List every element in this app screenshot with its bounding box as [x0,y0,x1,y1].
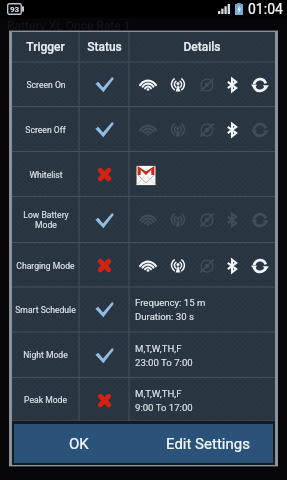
staticText: Details [183,40,221,54]
button[interactable]: Smart Schedule [12,287,275,332]
button[interactable]: Peak Mode [12,378,275,422]
staticText: Screen On [26,80,66,90]
other: GPS [198,76,216,94]
button[interactable]: Charging Mode [12,243,275,288]
other: Mobile data [169,76,187,94]
staticText: Duration: 30 s [135,311,194,322]
staticText: Night Mode [23,350,68,360]
button[interactable]: Night Mode [12,332,275,378]
button[interactable]: Whitelist [12,152,275,197]
button[interactable]: Edit Settings [143,424,273,463]
staticText: Edit Settings [166,435,250,453]
other: GPS [198,211,216,229]
staticText: OK [69,435,89,453]
button[interactable]: Screen Off [12,107,275,152]
other: GPS [198,121,216,139]
other: Sync [251,211,269,229]
other: Bluetooth [225,123,239,137]
staticText: Charging Mode [16,261,75,271]
other: Bluetooth [225,213,239,227]
other: Sync [251,257,269,275]
staticText: M,T,W,TH,F [135,388,182,399]
staticText: Status [87,40,122,54]
staticText: Battery XL Once Rate 1 [7,19,131,33]
other: Bluetooth [225,259,239,273]
other: Sync [251,76,269,94]
other: Mobile data [169,121,187,139]
staticText: M,T,W,TH,F [135,343,182,354]
staticText: 23:00 To 7:00 [135,357,193,368]
staticText: 9:00 To 17:00 [135,402,193,413]
other: GPS [198,257,216,275]
staticText: Peak Mode [24,395,67,405]
staticText: Trigger [26,40,65,54]
staticText: Low Battery Mode [23,210,69,230]
staticText: 93 [10,5,20,14]
staticText: Smart Schedule [15,305,76,315]
staticText: 01:04 [248,1,283,17]
button[interactable]: Low Battery Mode [12,197,275,243]
other: Wi-Fi [139,76,157,94]
staticText: Frequency: 15 m [135,297,206,308]
other: Bluetooth [225,78,239,92]
other: Sync [251,121,269,139]
other: Wi-Fi [139,121,157,139]
button[interactable]: Screen On [12,62,275,107]
staticText: Screen Off [25,125,66,135]
staticText: Whitelist [29,170,63,180]
other: Mobile data [169,211,187,229]
other: Mobile data [169,257,187,275]
button[interactable]: OK [14,424,143,463]
other: Wi-Fi [139,211,157,229]
other: Wi-Fi [139,257,157,275]
